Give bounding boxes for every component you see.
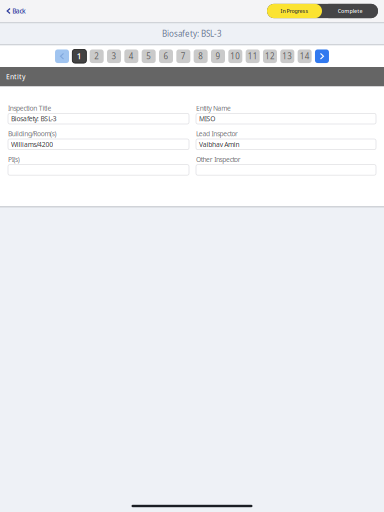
staticText: In Progress [280,7,308,15]
button[interactable]: Williams/4200 [8,139,189,150]
staticText: 2 [94,51,99,61]
button[interactable]: Next page [315,49,329,63]
staticText: 12 [265,51,275,61]
button[interactable]: 5 [142,49,156,63]
button[interactable]: Biosafety: BSL-3 [8,113,189,124]
button[interactable]: 8 [194,49,208,63]
button[interactable]: MISO [196,113,376,124]
button[interactable]: Previous page [55,49,69,63]
button[interactable]: 7 [176,49,190,63]
staticText: Williams/4200 [11,140,53,149]
staticText: Back [12,7,26,15]
button[interactable]: Vaibhav Amin [196,139,376,150]
button[interactable]: Complete [322,4,378,18]
button[interactable]: 10 [228,49,242,63]
staticText: 11 [248,51,258,61]
staticText: Entity [6,72,26,81]
staticText: Entity Name [196,104,231,113]
button[interactable]: 3 [107,49,121,63]
staticText: Complete [338,7,362,15]
button[interactable]: 4 [124,49,138,63]
staticText: 8 [198,51,203,61]
button[interactable]: 9 [211,49,225,63]
staticText: 5 [146,51,151,61]
staticText: Building/Room(s) [8,129,56,138]
staticText: Biosafety: BSL-3 [11,114,57,123]
staticText: Biosafety: BSL-3 [162,28,222,39]
staticText: 13 [282,51,292,61]
button[interactable]: 11 [246,49,260,63]
staticText: MISO [199,114,215,123]
button[interactable]: In Progress [267,4,322,18]
staticText: Other Inspector [196,155,241,164]
staticText: 6 [163,51,168,61]
button[interactable]: 1 [72,49,86,63]
staticText: 3 [111,51,116,61]
button[interactable]: 14 [298,49,312,63]
staticText: Vaibhav Amin [199,140,240,149]
button[interactable]: 13 [280,49,294,63]
button[interactable]: 6 [159,49,173,63]
staticText: 4 [129,51,134,61]
button[interactable]: 2 [90,49,104,63]
staticText: Inspection Title [8,104,51,113]
staticText: PI(s) [8,155,20,164]
staticText: 7 [181,51,186,61]
staticText: Lead Inspector [196,129,238,138]
staticText: 14 [300,51,310,61]
button[interactable]: Back [0,0,32,22]
staticText: 10 [230,51,240,61]
staticText: 1 [77,51,82,61]
staticText: 9 [215,51,220,61]
button[interactable]: 12 [263,49,277,63]
